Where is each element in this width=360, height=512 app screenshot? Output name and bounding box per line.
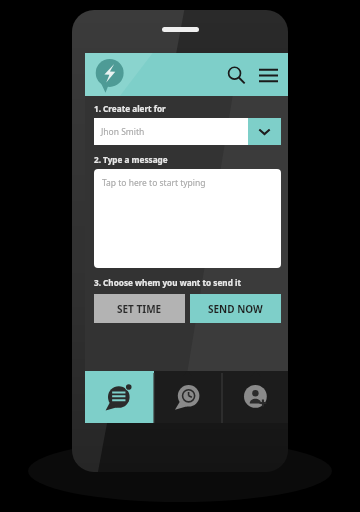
staticText: SET TIME: [117, 302, 162, 316]
button[interactable]: App logo: [92, 58, 126, 92]
staticText: SEND NOW: [208, 302, 263, 316]
staticText: Tap to here to start typing: [102, 177, 206, 189]
button[interactable]: SEND NOW: [190, 294, 281, 323]
other: New message: [105, 382, 135, 412]
staticText: 1. Create alert for: [94, 103, 166, 114]
staticText: 3. Choose whem you want to send it: [94, 277, 241, 288]
button[interactable]: Menu: [254, 61, 282, 89]
button[interactable]: Tap to here to start typing: [94, 169, 281, 268]
button[interactable]: SET TIME: [94, 294, 185, 323]
staticText: Jhon Smith: [101, 126, 145, 138]
button[interactable]: Tab: [154, 371, 222, 423]
button[interactable]: Messages tab: [85, 371, 154, 423]
other: Scheduled: [173, 382, 203, 412]
staticText: 2. Type a message: [94, 154, 168, 165]
button[interactable]: Jhon Smith: [94, 118, 281, 145]
button[interactable]: Tab: [222, 371, 288, 423]
button[interactable]: Search: [222, 61, 250, 89]
other: Add contact: [241, 382, 271, 412]
